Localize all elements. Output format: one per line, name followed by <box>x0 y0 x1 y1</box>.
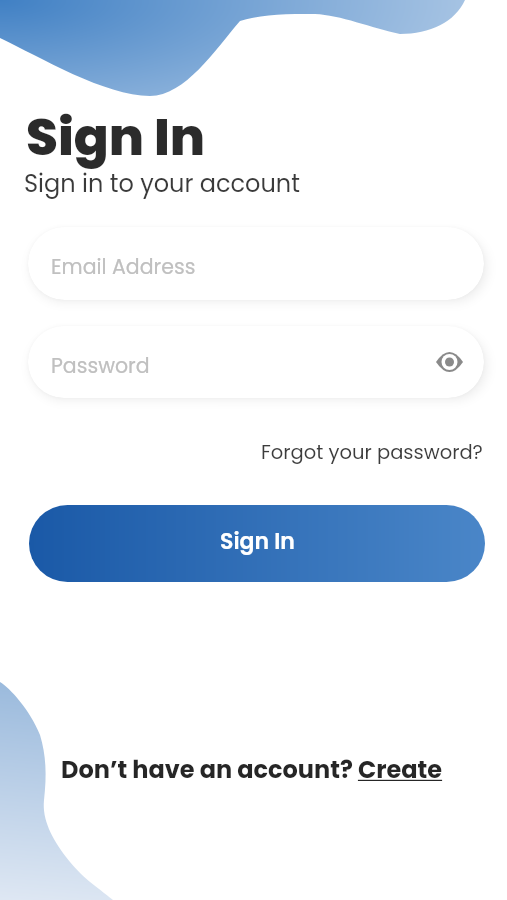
button[interactable]: Password <box>28 326 484 398</box>
staticText: Sign in to your account <box>24 167 300 201</box>
staticText: Don’t have an account? Create <box>61 753 443 787</box>
staticText: Sign In <box>26 101 206 173</box>
button[interactable]: Forgot your password? <box>261 439 483 466</box>
button[interactable]: Sign In <box>29 505 485 582</box>
button[interactable]: Email Address <box>28 227 484 300</box>
button[interactable] <box>436 352 463 372</box>
button[interactable]: Don’t have an account? Create <box>61 753 443 787</box>
staticText: Password <box>51 351 150 380</box>
staticText: Sign In <box>220 526 295 557</box>
staticText: Email Address <box>51 252 196 281</box>
